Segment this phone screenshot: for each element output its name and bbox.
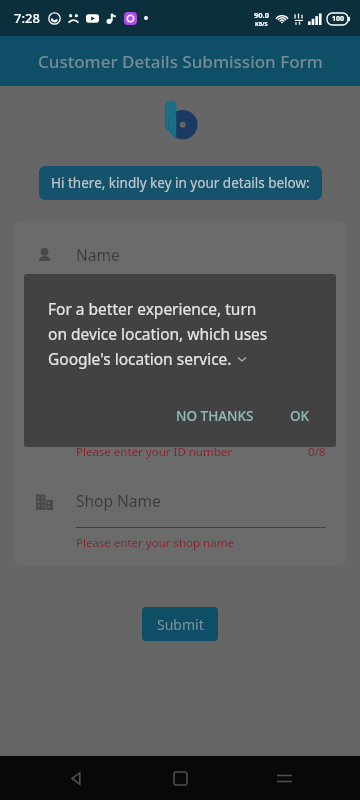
button[interactable]: Recent apps <box>256 756 312 800</box>
button[interactable]: NO THANKS <box>168 399 262 433</box>
staticText: Hi there, kindly key in your details bel… <box>51 174 310 192</box>
other: Shop <box>36 493 53 510</box>
staticText: Please enter your shop name <box>76 535 234 551</box>
button[interactable]: Hi there, kindly key in your details bel… <box>39 166 322 200</box>
staticText: Please enter your ID number <box>76 444 233 460</box>
staticText: OK <box>290 407 310 425</box>
staticText: Google's location service. <box>48 348 232 369</box>
staticText: For a better experience, turn <box>48 298 257 319</box>
staticText: Shop Name <box>76 490 161 511</box>
other: Person <box>36 247 53 264</box>
staticText: KB/S <box>255 20 268 27</box>
staticText: Name <box>76 244 120 265</box>
button[interactable]: Home <box>152 756 208 800</box>
other: Expand <box>237 354 247 364</box>
staticText: Submit <box>157 615 204 634</box>
button[interactable]: Submit <box>142 607 218 641</box>
staticText: on device location, which uses <box>48 323 268 344</box>
button[interactable]: Back <box>48 756 104 800</box>
staticText: 0/8 <box>308 444 326 460</box>
staticText: NO THANKS <box>176 407 254 425</box>
staticText: 90.0 <box>254 10 269 20</box>
staticText: Customer Details Submission Form <box>38 50 323 73</box>
staticText: 100 <box>332 14 345 24</box>
button[interactable]: OK <box>282 399 318 433</box>
staticText: 7:28 <box>14 9 40 27</box>
